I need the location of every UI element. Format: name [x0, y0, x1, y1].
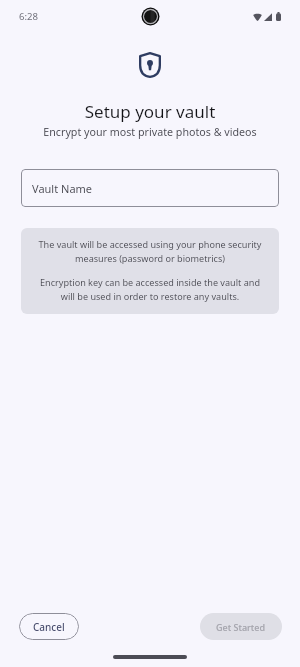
- button[interactable]: Cancel: [19, 613, 79, 640]
- staticText: 6:28: [19, 10, 39, 23]
- staticText: Get Started: [216, 621, 266, 633]
- staticText: Encrypt your most private photos & video…: [0, 125, 300, 140]
- staticText: The vault will be accessed using your ph…: [34, 238, 266, 264]
- button[interactable]: Vault Name: [21, 169, 279, 207]
- other: Vault: [139, 52, 161, 78]
- staticText: Vault Name: [32, 181, 93, 196]
- staticText: Cancel: [33, 620, 65, 634]
- staticText: Encryption key can be accessed inside th…: [34, 276, 266, 302]
- button[interactable]: Get Started: [200, 613, 282, 640]
- staticText: Setup your vault: [0, 100, 300, 123]
